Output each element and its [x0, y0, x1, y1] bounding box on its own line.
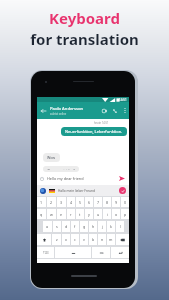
button[interactable]: h [89, 221, 97, 232]
button[interactable]: 3 [57, 197, 66, 207]
staticText: 4 [70, 200, 73, 205]
staticText: 14:51 [119, 98, 127, 102]
button[interactable]: o [112, 209, 120, 219]
staticText: w [50, 212, 53, 217]
staticText: k [110, 224, 112, 229]
button[interactable]: x [62, 234, 70, 245]
staticText: for translation [30, 29, 139, 49]
button[interactable]: p [121, 209, 129, 219]
staticText: n [101, 237, 104, 242]
button[interactable]: b [89, 234, 97, 245]
staticText: zuletzt online [50, 112, 67, 116]
staticText: 7 [97, 200, 100, 205]
button[interactable]: g [80, 221, 88, 232]
button[interactable]: k [107, 221, 115, 232]
button[interactable]: c [71, 234, 79, 245]
staticText: Paolo Andersson [50, 106, 84, 112]
button[interactable]: d [62, 221, 70, 232]
staticText: ?123 [43, 251, 49, 255]
staticText: s [56, 224, 58, 229]
button[interactable]: 9 [112, 197, 120, 207]
button[interactable]: u [94, 209, 102, 219]
staticText: 5 [79, 200, 82, 205]
button[interactable] [92, 247, 110, 258]
button[interactable]: t [76, 209, 84, 219]
button[interactable]: a [43, 221, 52, 232]
button[interactable]: q [37, 209, 46, 219]
staticText: r [70, 212, 72, 217]
button[interactable] [116, 234, 129, 245]
staticText: o [115, 212, 118, 217]
button[interactable]: More options [120, 102, 129, 119]
staticText: x [65, 237, 67, 242]
button[interactable]: ?123 [37, 247, 54, 258]
button[interactable]: v [80, 234, 88, 245]
button[interactable]: 1 [37, 197, 46, 207]
button[interactable]: w [47, 209, 56, 219]
button[interactable]: Accept translation [119, 187, 126, 194]
button[interactable]: z [52, 234, 61, 245]
staticText: i [107, 212, 108, 217]
button[interactable]: 5 [76, 197, 84, 207]
staticText: u [97, 212, 100, 217]
button[interactable]: e [57, 209, 66, 219]
staticText: 0 [124, 200, 127, 205]
button[interactable] [111, 247, 129, 258]
button[interactable]: 2 [47, 197, 56, 207]
staticText: Hello my dear friend [47, 176, 84, 181]
button[interactable]: f [71, 221, 79, 232]
staticText: l [120, 224, 121, 229]
staticText: heute 14:51 [94, 121, 109, 125]
button[interactable]: j [98, 221, 106, 232]
staticText: j [102, 224, 103, 229]
button[interactable]: Send [117, 172, 126, 185]
staticText: b [92, 237, 95, 242]
button[interactable]: m [107, 234, 115, 245]
button[interactable]: 0 [121, 197, 129, 207]
staticText: Neuerfunktion, Leberfunktion. [65, 129, 123, 134]
staticText: t [79, 212, 81, 217]
staticText: d [65, 224, 68, 229]
staticText: a [46, 224, 49, 229]
staticText: 6 [88, 200, 91, 205]
staticText: Keyboard [49, 8, 120, 28]
staticText: e [60, 212, 63, 217]
button[interactable]: Translate [40, 188, 46, 194]
button[interactable]: l [116, 221, 124, 232]
button[interactable] [37, 234, 51, 245]
staticText: g [83, 224, 86, 229]
staticText: m [109, 237, 113, 242]
button[interactable] [55, 247, 91, 258]
button[interactable]: 8 [103, 197, 111, 207]
staticText: 8 [106, 200, 109, 205]
staticText: f [74, 224, 76, 229]
button[interactable]: s [53, 221, 61, 232]
button[interactable]: 4 [67, 197, 75, 207]
staticText: Also, was ist los? [47, 168, 75, 170]
staticText: Hallo mein lieber Freund [58, 189, 95, 193]
button[interactable]: y [85, 209, 93, 219]
staticText: 2 [50, 200, 53, 205]
button[interactable]: Video call [99, 102, 110, 119]
staticText: c [74, 237, 76, 242]
button[interactable]: 7 [94, 197, 102, 207]
staticText: 1 [40, 200, 43, 205]
staticText: q [40, 212, 43, 217]
button[interactable]: r [67, 209, 75, 219]
button[interactable]: Back [37, 102, 50, 119]
button[interactable]: 6 [85, 197, 93, 207]
staticText: 3 [60, 200, 63, 205]
staticText: y [88, 212, 90, 217]
button[interactable]: n [98, 234, 106, 245]
staticText: p [124, 212, 127, 217]
button[interactable]: Call [110, 102, 120, 119]
staticText: 9 [115, 200, 118, 205]
staticText: Wow [47, 155, 56, 160]
staticText: v [83, 237, 85, 242]
staticText: h [92, 224, 95, 229]
staticText: z [56, 237, 58, 242]
button[interactable]: i [103, 209, 111, 219]
